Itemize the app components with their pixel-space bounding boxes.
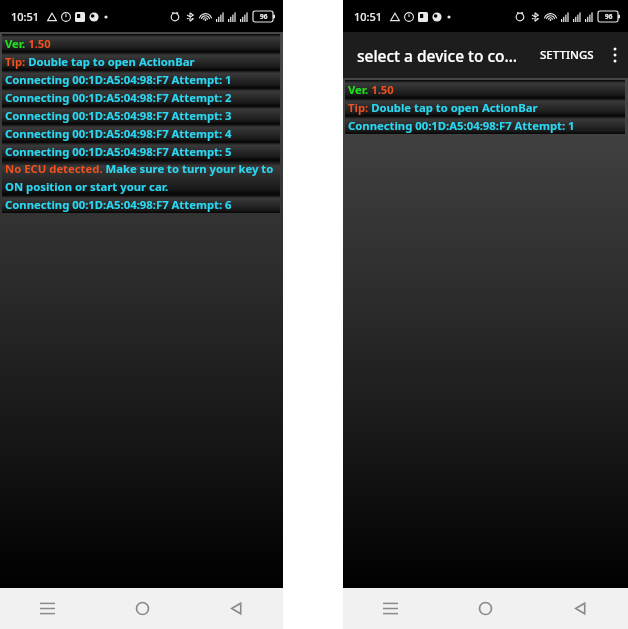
button[interactable]: Tip: Double tap to open ActionBar — [345, 98, 625, 116]
button[interactable]: Connecting 00:1D:A5:04:98:F7 Attempt: 5 — [2, 142, 280, 160]
button[interactable]: Recent apps — [343, 588, 438, 629]
staticText: Connecting 00:1D:A5:04:98:F7 Attempt: 1 — [348, 118, 575, 133]
staticText: 96 — [605, 12, 613, 21]
staticText: 96 — [260, 12, 268, 21]
staticText: Ver. 1.50 — [5, 36, 51, 51]
staticText: Connecting 00:1D:A5:04:98:F7 Attempt: 2 — [5, 90, 232, 105]
staticText: Connecting 00:1D:A5:04:98:F7 Attempt: 5 — [5, 144, 232, 159]
button[interactable]: Connecting 00:1D:A5:04:98:F7 Attempt: 1 — [345, 116, 625, 134]
button[interactable]: Home — [95, 588, 189, 629]
button[interactable]: Recent apps — [0, 588, 95, 629]
staticText: Ver. 1.50 — [348, 82, 394, 97]
button[interactable]: Connecting 00:1D:A5:04:98:F7 Attempt: 2 — [2, 88, 280, 106]
button[interactable]: SETTINGS — [532, 32, 602, 78]
staticText: Connecting 00:1D:A5:04:98:F7 Attempt: 3 — [5, 108, 232, 123]
button[interactable]: More options — [602, 32, 628, 78]
staticText: Tip: Double tap to open ActionBar — [5, 54, 195, 69]
button[interactable]: Home — [438, 588, 533, 629]
staticText: SETTINGS — [540, 47, 594, 63]
staticText: Connecting 00:1D:A5:04:98:F7 Attempt: 4 — [5, 126, 232, 141]
button[interactable]: Tip: Double tap to open ActionBar — [2, 52, 280, 70]
button[interactable]: Back — [189, 588, 283, 629]
staticText: Connecting 00:1D:A5:04:98:F7 Attempt: 1 — [5, 72, 232, 87]
button[interactable]: Connecting 00:1D:A5:04:98:F7 Attempt: 4 — [2, 124, 280, 142]
button[interactable]: Ver. 1.50 — [2, 34, 280, 52]
button[interactable]: Ver. 1.50 — [345, 80, 625, 98]
button[interactable]: Connecting 00:1D:A5:04:98:F7 Attempt: 3 — [2, 106, 280, 124]
button[interactable]: Back — [533, 588, 628, 629]
staticText: Connecting 00:1D:A5:04:98:F7 Attempt: 6 — [5, 197, 232, 212]
button[interactable]: Connecting 00:1D:A5:04:98:F7 Attempt: 1 — [2, 70, 280, 88]
button[interactable]: Connecting 00:1D:A5:04:98:F7 Attempt: 6 — [2, 195, 280, 213]
button[interactable]: No ECU detected. Make sure to turn your … — [2, 160, 280, 195]
button[interactable]: select a device to co… — [343, 32, 532, 78]
staticText: 10:51 — [11, 9, 40, 24]
staticText: No ECU detected. Make sure to turn your … — [5, 161, 277, 194]
staticText: 10:51 — [354, 9, 383, 24]
staticText: select a device to co… — [357, 45, 518, 66]
staticText: Tip: Double tap to open ActionBar — [348, 100, 538, 115]
